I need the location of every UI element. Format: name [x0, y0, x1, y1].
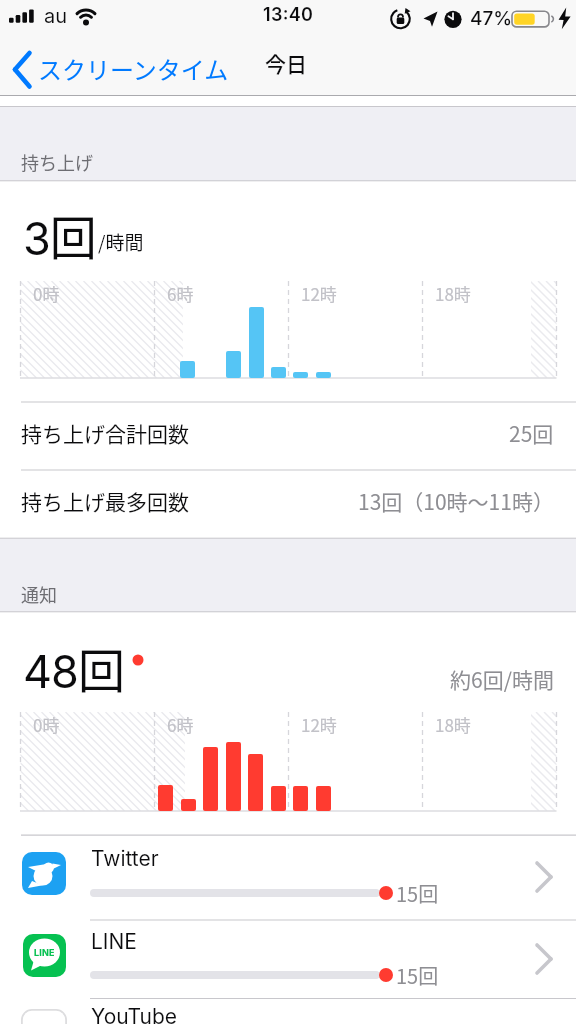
staticText: 18時: [435, 712, 471, 737]
staticText: 約6回/時間: [450, 664, 554, 694]
staticText: 6時: [167, 712, 194, 737]
staticText: 0時: [33, 281, 60, 306]
staticText: 13回（10時〜11時）: [358, 486, 554, 516]
staticText: 13:40: [263, 4, 314, 26]
button[interactable]: [0, 998, 576, 1024]
staticText: 15回: [396, 961, 439, 990]
staticText: 0時: [33, 712, 60, 737]
staticText: 15回: [396, 879, 439, 908]
staticText: 12時: [301, 712, 337, 737]
button[interactable]: [8, 45, 248, 91]
staticText: Twitter: [91, 846, 159, 871]
staticText: 通知: [21, 581, 57, 607]
staticText: 6時: [167, 281, 194, 306]
staticText: 25回: [509, 418, 554, 448]
staticText: 持ち上げ合計回数: [21, 418, 189, 448]
staticText: 48回: [23, 633, 125, 701]
staticText: 持ち上げ最多回数: [21, 486, 189, 516]
staticText: 3回: [23, 200, 97, 268]
button[interactable]: [0, 836, 576, 920]
staticText: au: [44, 4, 68, 28]
staticText: スクリーンタイム: [38, 51, 229, 86]
staticText: 今日: [265, 48, 307, 78]
staticText: /時間: [98, 228, 144, 256]
staticText: YouTube: [91, 1004, 178, 1024]
staticText: LINE: [91, 929, 137, 954]
button[interactable]: [0, 920, 576, 998]
staticText: 18時: [435, 281, 471, 306]
staticText: 47%: [470, 7, 513, 30]
staticText: 12時: [301, 281, 337, 306]
staticText: 持ち上げ: [21, 149, 93, 175]
staticText: LINE: [34, 947, 55, 958]
